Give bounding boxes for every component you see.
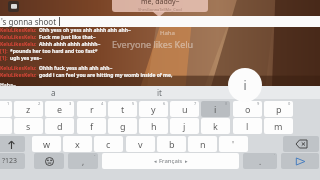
staticText: .	[259, 156, 262, 167]
staticText: 2	[38, 101, 41, 106]
staticText: KeluLikesKelu:	[0, 72, 37, 79]
staticText: g	[120, 120, 126, 132]
staticText: p	[276, 103, 282, 115]
staticText: x	[75, 138, 80, 150]
staticText: r	[90, 103, 94, 115]
staticText: [1]:	[0, 48, 8, 55]
staticText: 4	[101, 101, 104, 106]
button[interactable]	[212, 86, 320, 99]
staticText: e	[57, 103, 63, 115]
staticText: Fuck me just like that~	[39, 34, 96, 41]
button[interactable]	[281, 153, 319, 169]
staticText: k	[213, 120, 218, 132]
button[interactable]: '	[219, 136, 248, 152]
staticText: h	[151, 120, 157, 132]
staticText: 5	[132, 101, 135, 106]
button[interactable]: v	[126, 136, 155, 152]
staticText: 6	[163, 101, 166, 106]
button[interactable]: ?123	[0, 153, 25, 169]
button[interactable]: ◂	[102, 153, 239, 169]
staticText: o	[245, 103, 251, 115]
button[interactable]: k	[201, 118, 230, 134]
staticText: 's gonna shoot	[1, 16, 57, 27]
button[interactable]: l	[233, 118, 262, 134]
staticText: Haha~	[0, 82, 16, 89]
staticText: Everyone likes Kelu	[112, 38, 194, 50]
staticText: s	[26, 120, 31, 132]
staticText: t	[121, 103, 125, 115]
staticText: 1	[7, 101, 10, 106]
staticText: me, daddy~	[141, 0, 180, 7]
staticText: 3	[69, 101, 72, 106]
button[interactable]: a	[0, 101, 12, 117]
button[interactable]: y	[139, 101, 168, 117]
button[interactable]: it	[106, 86, 212, 99]
button[interactable]: x	[63, 136, 92, 152]
staticText: godd i can feel you are hitting my womb …	[39, 72, 173, 79]
staticText: Haha	[160, 29, 175, 37]
button[interactable]: e	[45, 101, 74, 117]
button[interactable]: m	[264, 118, 293, 134]
button[interactable]: g	[108, 118, 137, 134]
button[interactable]	[283, 136, 319, 152]
staticText: 7	[194, 101, 197, 106]
button[interactable]: s	[14, 118, 43, 134]
staticText: f	[90, 120, 94, 132]
staticText: v	[138, 138, 143, 150]
button[interactable]: ,	[68, 153, 98, 169]
staticText: '	[232, 138, 235, 150]
staticText: ◂	[154, 158, 157, 164]
button[interactable]: d	[45, 118, 74, 134]
staticText: ShesGonnaTellMe_Cool	[138, 7, 182, 12]
button[interactable]: Chat	[8, 1, 19, 12]
button[interactable]: 's gonna shoot	[0, 16, 320, 27]
staticText: b	[169, 138, 175, 150]
staticText: '	[274, 153, 275, 158]
button[interactable]: a	[0, 86, 106, 99]
staticText: a	[51, 87, 56, 98]
staticText: i	[214, 103, 217, 115]
button[interactable]	[34, 153, 64, 169]
staticText: l	[246, 120, 249, 132]
button[interactable]: o	[233, 101, 262, 117]
button[interactable]: n	[188, 136, 217, 152]
staticText: KeluLikesKelu:	[0, 41, 37, 48]
staticText: KeluLikesKelu:	[0, 65, 37, 72]
staticText: ugh yes yes~	[10, 55, 42, 62]
button[interactable]: c	[94, 136, 123, 152]
button[interactable]: r	[77, 101, 106, 117]
staticText: c	[106, 138, 111, 150]
staticText: [1]:	[0, 55, 8, 62]
button[interactable]: f	[77, 118, 106, 134]
button[interactable]: i	[201, 101, 230, 117]
button[interactable]: w	[32, 136, 61, 152]
staticText: 9	[257, 101, 260, 106]
button[interactable]: h	[139, 118, 168, 134]
button[interactable]: z	[14, 101, 43, 117]
button[interactable]: t	[108, 101, 137, 117]
staticText: d	[57, 120, 63, 132]
staticText: z	[26, 103, 31, 115]
button[interactable]: p	[264, 101, 293, 117]
staticText: w	[43, 138, 51, 150]
staticText: u	[182, 103, 188, 115]
staticText: m	[274, 120, 283, 132]
button[interactable]: j	[170, 118, 199, 134]
button[interactable]	[0, 136, 25, 152]
staticText: ▸	[185, 158, 188, 164]
staticText: •	[94, 153, 96, 158]
staticText: j	[183, 120, 186, 132]
staticText: y	[151, 103, 156, 115]
staticText: *pounds her too hard and too fast*	[10, 48, 98, 55]
button[interactable]: u	[170, 101, 199, 117]
staticText: KeluLikesKelu:	[0, 34, 37, 41]
staticText: 8	[225, 101, 228, 106]
staticText: Ahhh ahhh ahhh ahhhh~	[39, 41, 101, 48]
button[interactable]: b	[157, 136, 186, 152]
staticText: 0	[288, 101, 291, 106]
staticText: ,	[82, 156, 85, 167]
